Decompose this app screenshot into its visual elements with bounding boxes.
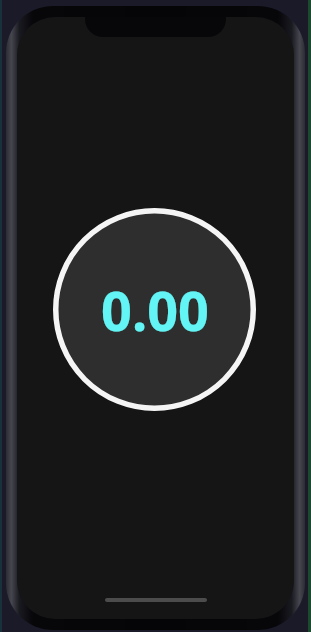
staticText: 0.00 [101,273,209,347]
button[interactable]: Timer, 0.00 seconds [53,208,256,411]
